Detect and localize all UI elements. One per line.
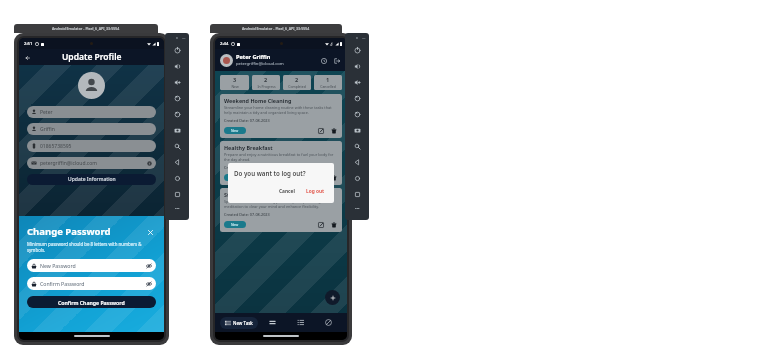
- staticText: Do you want to log out?: [234, 169, 306, 177]
- button[interactable]: Emulator control 3: [345, 74, 369, 90]
- button[interactable]: 2: [252, 75, 280, 90]
- button[interactable]: Emulator control 9: [345, 170, 369, 186]
- staticText: x: [356, 35, 358, 40]
- button[interactable]: Log out: [331, 55, 342, 66]
- staticText: Prepare and enjoy a nutritious breakfast…: [224, 152, 338, 162]
- staticText: New: [231, 84, 239, 89]
- staticText: Created Date: 07-08-2023: [224, 118, 270, 123]
- staticText: Peter: [40, 109, 53, 116]
- staticText: 1: [326, 76, 330, 84]
- button[interactable]: Emulator control 5: [165, 106, 189, 122]
- button[interactable]: Emulator control 6: [165, 122, 189, 138]
- staticText: •••: [175, 206, 180, 211]
- button[interactable]: New Password: [27, 259, 156, 272]
- staticText: Confirm Password: [40, 280, 85, 287]
- staticText: New Task: [233, 320, 253, 326]
- button[interactable]: Stretching and Meditation: [220, 188, 342, 232]
- staticText: petergriffin@icloud.com: [40, 160, 97, 167]
- button[interactable]: Healthy Breakfast: [220, 141, 342, 185]
- staticText: New: [231, 175, 239, 180]
- staticText: Update Information: [68, 176, 116, 183]
- staticText: Android Emulator - Pixel_6_API_33:5554: [52, 26, 120, 31]
- button[interactable]: Toggle password visibility: [145, 262, 152, 269]
- button[interactable]: New: [224, 221, 246, 228]
- button[interactable]: Weekend Home Cleaning: [220, 94, 342, 138]
- staticText: —: [182, 35, 186, 40]
- staticText: Confirm Change Password: [58, 299, 125, 306]
- staticText: New: [231, 222, 239, 227]
- button[interactable]: Delete: [329, 126, 338, 135]
- staticText: New: [231, 128, 239, 133]
- button[interactable]: Emulator control 1: [345, 42, 369, 58]
- button[interactable]: Griffin: [27, 123, 156, 135]
- button[interactable]: Emulator control 4: [165, 90, 189, 106]
- staticText: Minimum password should be 8 letters wit…: [27, 241, 156, 253]
- button[interactable]: Delete: [329, 173, 338, 182]
- staticText: Change Password: [27, 225, 111, 238]
- button[interactable]: 2: [283, 75, 311, 90]
- button[interactable]: New: [224, 174, 246, 181]
- button[interactable]: petergriffin@icloud.com: [27, 157, 156, 169]
- button[interactable]: More: [165, 202, 189, 214]
- button[interactable]: Close: [144, 226, 156, 238]
- button[interactable]: Emulator control 4: [345, 90, 369, 106]
- button[interactable]: 1: [314, 75, 342, 90]
- button[interactable]: Emulator control 7: [165, 138, 189, 154]
- button[interactable]: Emulator control 2: [165, 58, 189, 74]
- button[interactable]: In progress: [258, 313, 286, 332]
- button[interactable]: More: [345, 202, 369, 214]
- staticText: —: [362, 35, 366, 40]
- staticText: Griffin: [40, 126, 55, 133]
- button[interactable]: Emulator control 1: [165, 42, 189, 58]
- staticText: Cancelled: [320, 84, 336, 89]
- staticText: 2:44: [220, 41, 229, 47]
- button[interactable]: Toggle password visibility: [145, 280, 152, 287]
- button[interactable]: Emulator control 8: [165, 154, 189, 170]
- staticText: Weekend Home Cleaning: [224, 97, 292, 104]
- button[interactable]: Add task: [325, 290, 340, 305]
- staticText: 2:51: [24, 41, 33, 47]
- button[interactable]: Edit: [316, 220, 325, 229]
- button[interactable]: Log out: [303, 186, 328, 197]
- staticText: 01865738595: [40, 143, 72, 150]
- button[interactable]: Confirm Password: [27, 277, 156, 290]
- button[interactable]: Cancel: [276, 186, 298, 197]
- button[interactable]: Delete: [329, 220, 338, 229]
- staticText: •••: [355, 206, 360, 211]
- button[interactable]: Back: [22, 52, 33, 63]
- button[interactable]: New: [224, 127, 246, 134]
- staticText: x: [176, 35, 178, 40]
- button[interactable]: Emulator control 7: [345, 138, 369, 154]
- button[interactable]: New Task: [220, 317, 258, 329]
- button[interactable]: Emulator control 2: [345, 58, 369, 74]
- staticText: New Password: [40, 262, 76, 269]
- staticText: Android Emulator - Pixel_6_API_33:5554: [242, 26, 310, 31]
- button[interactable]: Emulator control 9: [165, 170, 189, 186]
- button[interactable]: 3: [220, 75, 249, 90]
- button[interactable]: Emulator control 5: [345, 106, 369, 122]
- button[interactable]: Emulator control 6: [345, 122, 369, 138]
- button[interactable]: Completed: [286, 313, 314, 332]
- staticText: Healthy Breakfast: [224, 144, 273, 151]
- button[interactable]: Emulator control 8: [345, 154, 369, 170]
- button[interactable]: Emulator control 10: [345, 186, 369, 202]
- staticText: 2: [264, 76, 268, 84]
- button[interactable]: Emulator control 10: [165, 186, 189, 202]
- staticText: Update Profile: [62, 51, 122, 63]
- staticText: In Progress: [257, 84, 276, 89]
- button[interactable]: 01865738595: [27, 140, 156, 152]
- button[interactable]: Peter: [27, 106, 156, 118]
- staticText: Peter Griffin: [236, 53, 271, 61]
- button[interactable]: Update Information: [27, 174, 156, 185]
- button[interactable]: Info: [318, 55, 329, 66]
- button[interactable]: Confirm Change Password: [27, 296, 156, 308]
- staticText: Spend 10 minutes stretching your body an…: [224, 199, 338, 209]
- staticText: Created Date: 07-08-2023: [224, 212, 270, 217]
- button[interactable]: Cancelled: [314, 313, 342, 332]
- staticText: petergriffin@icloud.com: [236, 61, 284, 67]
- staticText: 3: [233, 76, 237, 84]
- button[interactable]: Edit: [316, 126, 325, 135]
- staticText: Streamline your home cleaning routine wi…: [224, 105, 338, 115]
- button[interactable]: Emulator control 3: [165, 74, 189, 90]
